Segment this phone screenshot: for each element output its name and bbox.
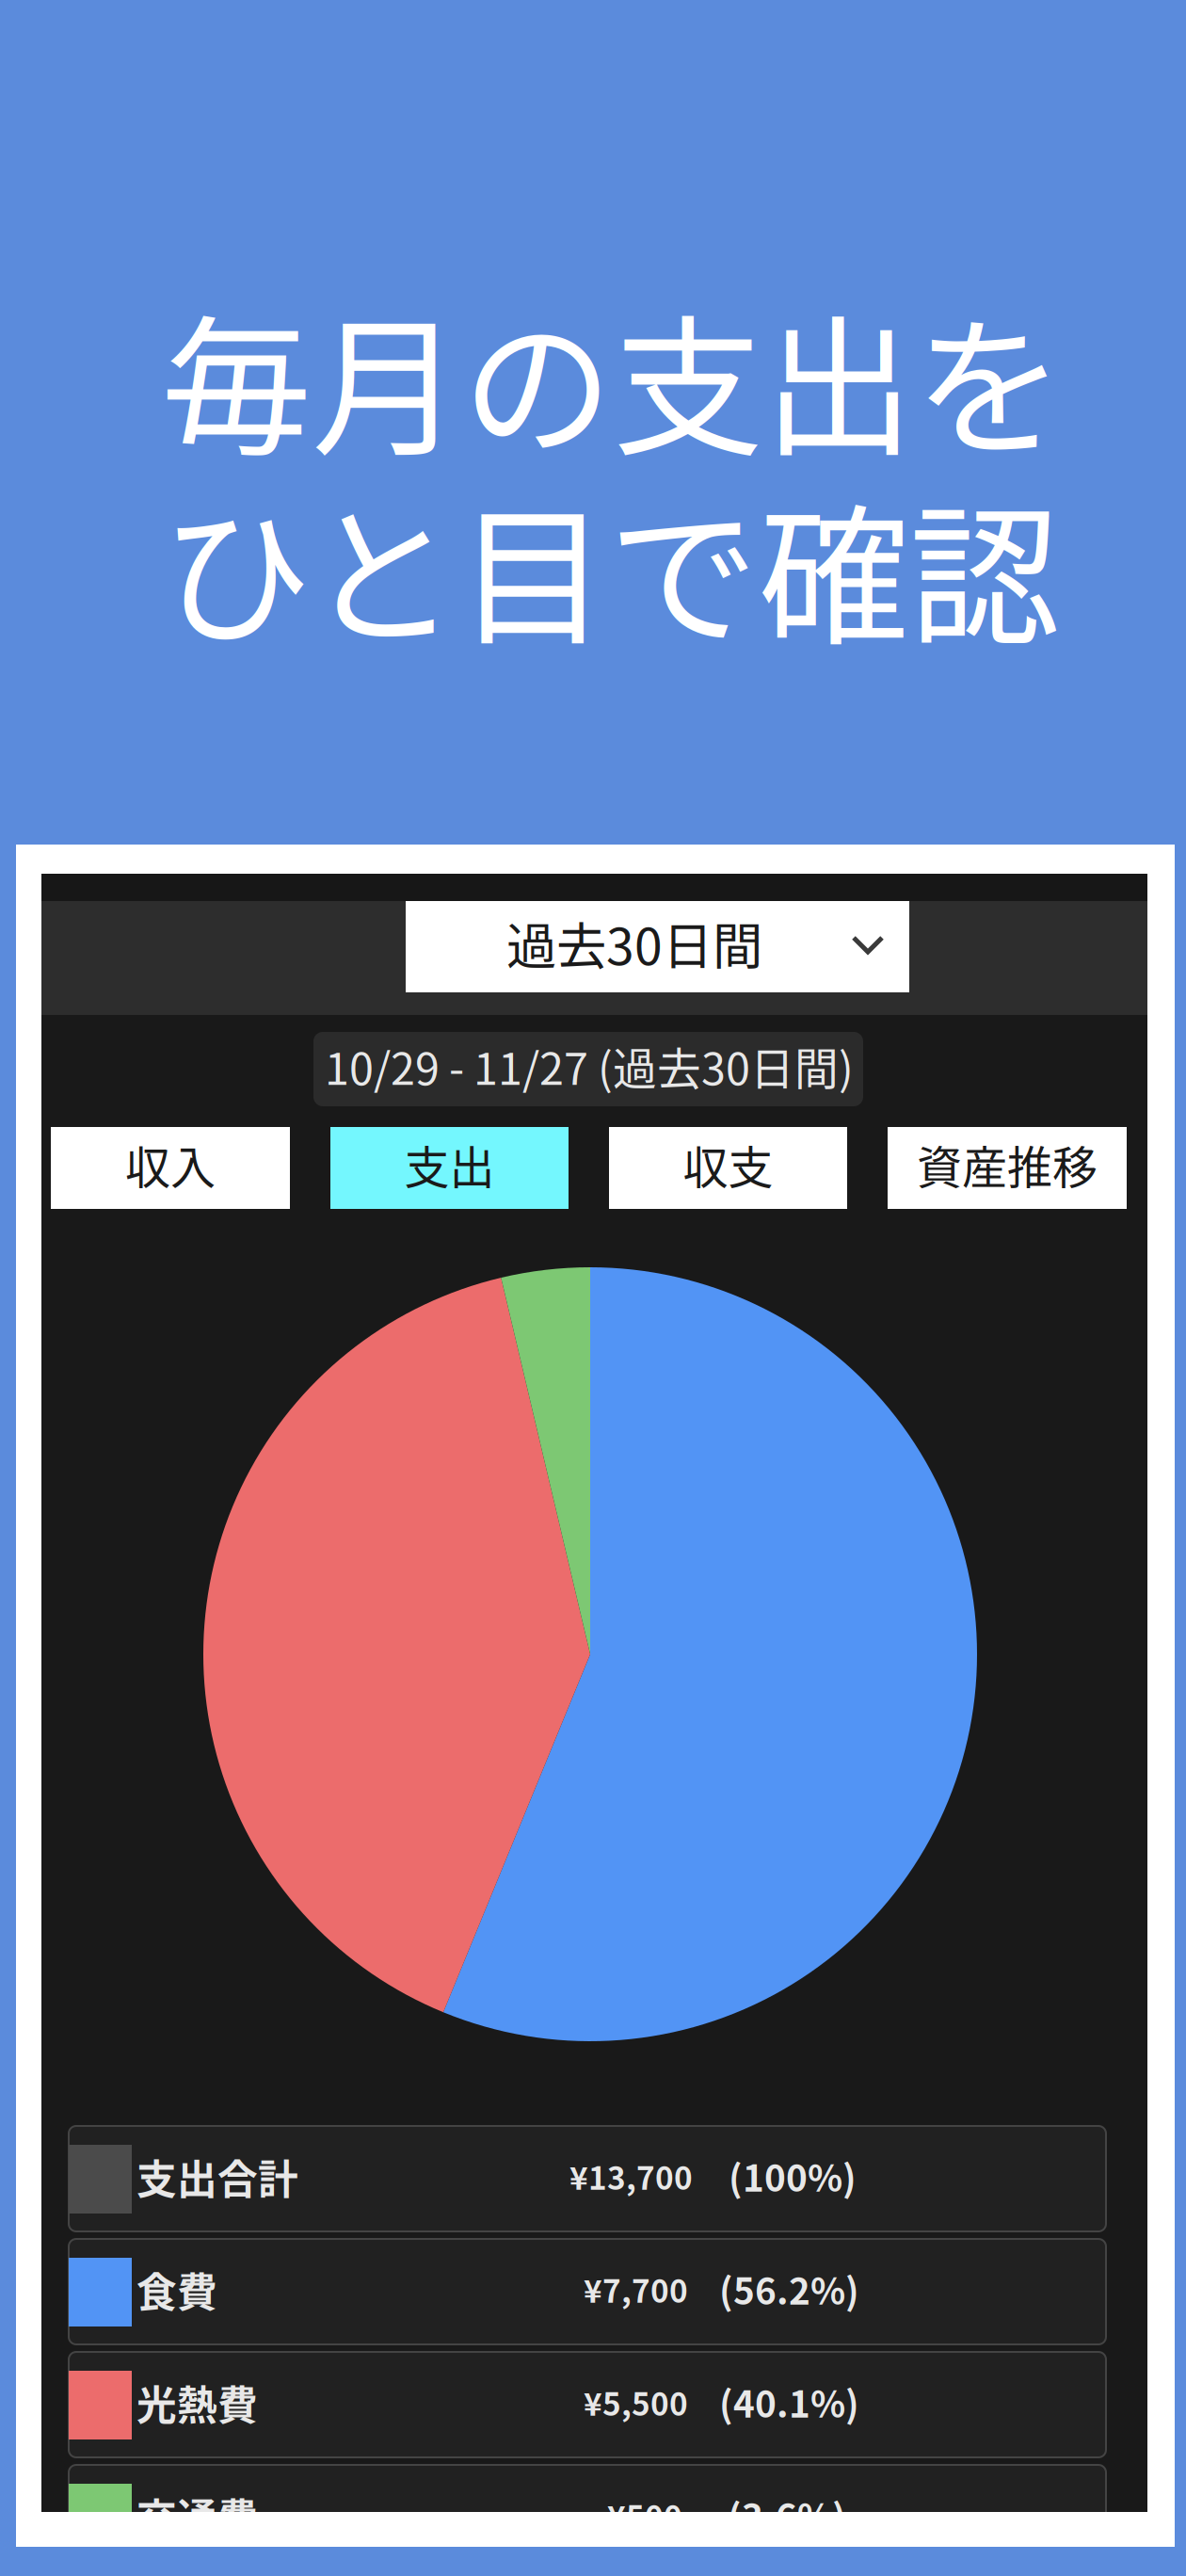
- staticText: 収支: [683, 1131, 773, 1197]
- staticText: ¥5,500: [584, 2379, 688, 2425]
- staticText: 交通費: [136, 2487, 258, 2545]
- staticText: 収入: [125, 1131, 216, 1197]
- staticText: (3.6%): [728, 2488, 846, 2541]
- staticText: (40.1%): [719, 2375, 859, 2428]
- staticText: 食費: [136, 2261, 217, 2319]
- button[interactable]: 10/29 - 11/27 (過去30日間): [313, 1032, 863, 1106]
- staticText: 資産推移: [917, 1131, 1098, 1197]
- staticText: (56.2%): [719, 2262, 859, 2315]
- button[interactable]: 食費: [69, 2239, 1106, 2344]
- staticText: 毎月の支出を: [161, 268, 1065, 486]
- staticText: 10/29 - 11/27 (過去30日間): [325, 1034, 854, 1097]
- button[interactable]: 支出: [330, 1127, 569, 1209]
- button[interactable]: 収入: [51, 1127, 290, 1209]
- button[interactable]: 資産推移: [888, 1127, 1127, 1209]
- staticText: ひと目で確認: [161, 457, 1060, 675]
- button[interactable]: 光熱費: [69, 2352, 1106, 2457]
- button[interactable]: 支出合計: [69, 2126, 1106, 2231]
- staticText: 支出合計: [136, 2148, 298, 2206]
- staticText: 支出: [404, 1131, 495, 1197]
- button[interactable]: 過去30日間: [406, 901, 909, 992]
- button[interactable]: 収支: [609, 1127, 847, 1209]
- staticText: ¥500: [607, 2492, 682, 2538]
- staticText: 光熱費: [136, 2374, 258, 2432]
- button[interactable]: 交通費: [69, 2465, 1106, 2570]
- staticText: (100%): [729, 2149, 857, 2202]
- staticText: ¥13,700: [569, 2153, 693, 2199]
- staticText: ¥7,700: [584, 2266, 688, 2312]
- staticText: 過去30日間: [506, 907, 762, 979]
